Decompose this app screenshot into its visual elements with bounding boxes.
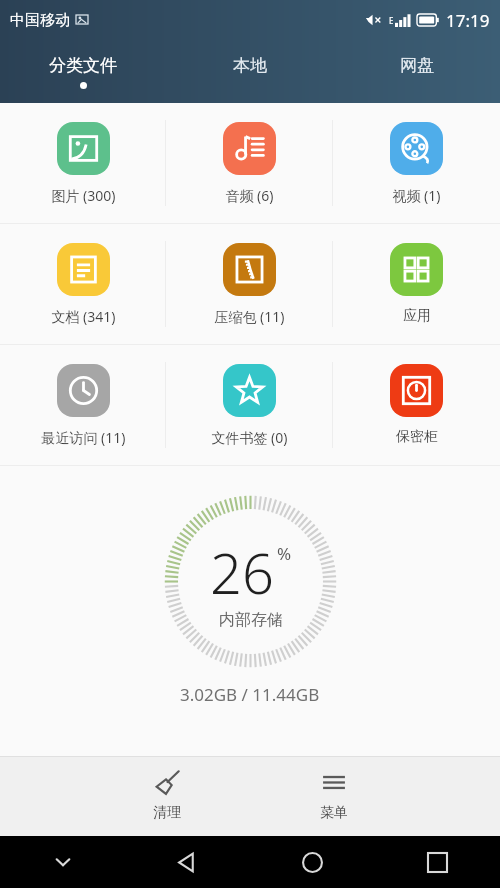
button[interactable]: Home xyxy=(250,836,375,888)
button[interactable]: 视频 (1) xyxy=(333,103,500,223)
button[interactable]: 分类文件 xyxy=(0,40,166,103)
button[interactable]: 网盘 xyxy=(333,40,500,103)
staticText: 3.02GB / 11.44GB xyxy=(180,683,320,706)
button[interactable]: 应用 xyxy=(333,224,500,344)
staticText: 内部存储 xyxy=(219,610,283,630)
button[interactable]: Recent apps xyxy=(375,836,500,888)
button[interactable]: 图片 (300) xyxy=(0,103,166,223)
button[interactable]: 音频 (6) xyxy=(166,103,333,223)
staticText: 音频 (6) xyxy=(225,186,274,205)
staticText: 文件书签 (0) xyxy=(211,428,288,447)
staticText: 文档 (341) xyxy=(51,307,116,326)
staticText: 应用 xyxy=(403,307,431,325)
staticText: 分类文件 xyxy=(49,55,117,76)
staticText: 图片 (300) xyxy=(51,186,116,205)
button[interactable]: 文档 (341) xyxy=(0,224,166,344)
button[interactable]: 保密柜 xyxy=(333,345,500,465)
staticText: 保密柜 xyxy=(396,428,438,446)
staticText: 26 xyxy=(210,534,274,610)
button[interactable]: 最近访问 (11) xyxy=(0,345,166,465)
staticText: 压缩包 (11) xyxy=(214,307,285,326)
staticText: 本地 xyxy=(233,55,267,76)
staticText: % xyxy=(277,542,292,565)
staticText: 17:19 xyxy=(446,9,490,32)
button[interactable]: 文件书签 (0) xyxy=(166,345,333,465)
staticText: E xyxy=(389,15,394,26)
button[interactable]: Back xyxy=(125,836,250,888)
staticText: 清理 xyxy=(153,804,181,822)
button[interactable]: 压缩包 (11) xyxy=(166,224,333,344)
staticText: 中国移动 xyxy=(10,11,70,30)
button[interactable]: Hide keyboard xyxy=(0,836,125,888)
staticText: 网盘 xyxy=(400,55,434,76)
button[interactable]: 菜单 xyxy=(250,756,417,836)
button[interactable]: 清理 xyxy=(83,756,250,836)
staticText: 最近访问 (11) xyxy=(41,428,126,447)
staticText: 视频 (1) xyxy=(392,186,441,205)
staticText: 菜单 xyxy=(320,804,348,822)
button[interactable]: 本地 xyxy=(166,40,333,103)
